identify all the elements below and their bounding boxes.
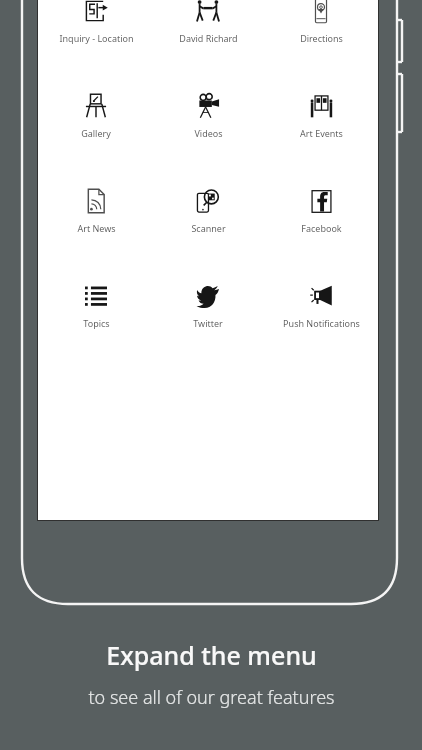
button[interactable]: Topics	[41, 281, 151, 329]
staticText: Art Events	[300, 127, 343, 139]
button[interactable]: Videos	[153, 91, 263, 139]
staticText: Inquiry - Location	[59, 32, 134, 44]
staticText: Push Notifications	[283, 317, 360, 329]
staticText: Expand the menu	[106, 638, 317, 672]
button[interactable]: David Richard	[153, 0, 263, 44]
button[interactable]: Inquiry - Location	[41, 0, 151, 44]
button[interactable]: Push Notifications	[266, 281, 376, 329]
button[interactable]: Twitter	[153, 281, 263, 329]
staticText: Twitter	[193, 317, 223, 329]
staticText: David Richard	[179, 32, 238, 44]
staticText: Directions	[300, 32, 343, 44]
staticText: Videos	[194, 127, 223, 139]
button[interactable]: Directions	[266, 0, 376, 44]
staticText: Gallery	[81, 127, 111, 139]
button[interactable]: Scanner	[153, 186, 263, 234]
staticText: Facebook	[301, 222, 342, 234]
button[interactable]: Art News	[41, 186, 151, 234]
staticText: Art News	[77, 222, 116, 234]
staticText: Scanner	[191, 222, 226, 234]
button[interactable]: Facebook	[266, 186, 376, 234]
button[interactable]: Art Events	[266, 91, 376, 139]
staticText: to see all of our great features	[88, 685, 335, 710]
staticText: Topics	[83, 317, 110, 329]
button[interactable]: Gallery	[41, 91, 151, 139]
